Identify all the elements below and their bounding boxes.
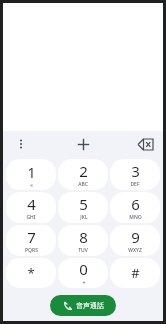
staticText: 7 — [27, 227, 36, 247]
staticText: 0 — [79, 259, 88, 279]
staticText: TUV — [78, 247, 88, 254]
button[interactable]: # — [110, 258, 160, 288]
staticText: ∞ — [29, 182, 34, 188]
staticText: 6 — [131, 194, 140, 214]
button[interactable]: 5 — [58, 192, 108, 223]
button[interactable]: 9 — [110, 225, 160, 256]
staticText: GHI — [26, 214, 36, 221]
staticText: 8 — [79, 227, 88, 247]
button[interactable]: 8 — [58, 225, 108, 256]
staticText: DEF — [130, 181, 140, 188]
staticText: 4 — [27, 194, 36, 214]
staticText: 音声通話 — [76, 301, 104, 310]
button[interactable]: Add, plus — [72, 133, 94, 155]
staticText: PQRS — [25, 247, 38, 254]
staticText: MNO — [129, 214, 142, 221]
staticText: # — [131, 264, 140, 282]
staticText: 5 — [79, 194, 88, 214]
staticText: 1 — [27, 162, 36, 182]
staticText: JKL — [80, 214, 88, 221]
button[interactable]: More options — [11, 134, 31, 154]
button[interactable]: 3 — [110, 159, 160, 190]
staticText: ABC — [78, 181, 88, 188]
staticText: WXYZ — [128, 247, 142, 254]
button[interactable]: * — [6, 258, 56, 288]
staticText: + — [82, 279, 86, 287]
staticText: 3 — [131, 161, 140, 181]
button[interactable]: 7 — [6, 225, 56, 256]
button[interactable]: 6 — [110, 192, 160, 223]
button[interactable]: 0 — [58, 258, 108, 288]
staticText: 2 — [79, 161, 88, 181]
button[interactable]: Backspace, delete — [134, 133, 156, 155]
button[interactable]: 1 — [6, 159, 56, 190]
staticText: 9 — [131, 227, 140, 247]
button[interactable]: 4 — [6, 192, 56, 223]
staticText: * — [27, 264, 35, 282]
button[interactable]: 2 — [58, 159, 108, 190]
button[interactable]: 音声通話 — [50, 295, 116, 316]
